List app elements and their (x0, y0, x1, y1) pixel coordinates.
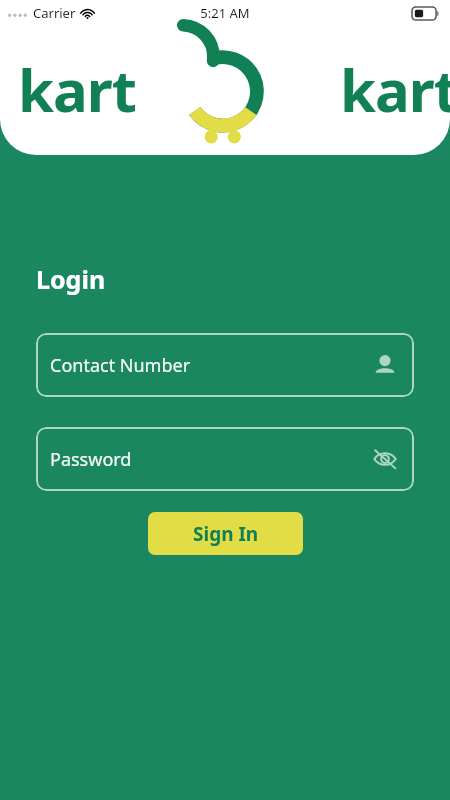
staticText: Sign In (193, 521, 259, 547)
staticText: Contact Number (50, 353, 372, 378)
staticText: kart (18, 50, 136, 129)
staticText: Login (36, 262, 106, 296)
staticText: Password (50, 447, 372, 472)
button[interactable]: Password (36, 427, 414, 491)
other: Show password (372, 446, 398, 472)
button[interactable]: Sign In (148, 512, 303, 555)
button[interactable]: Contact Number (36, 333, 414, 397)
staticText: 5:21 AM (200, 4, 250, 22)
other: Contact (372, 352, 398, 378)
staticText: kart (340, 50, 450, 129)
staticText: Carrier (33, 4, 76, 22)
